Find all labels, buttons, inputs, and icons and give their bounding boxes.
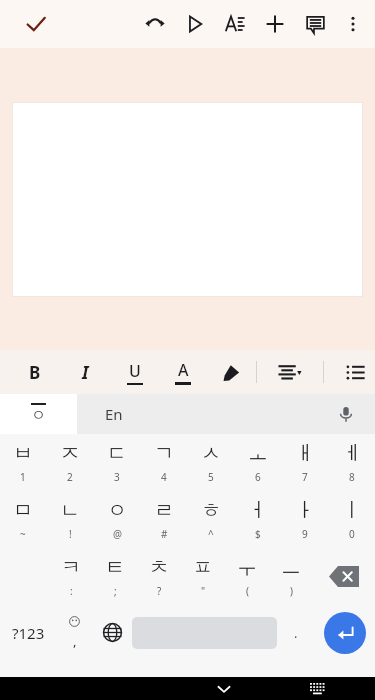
button[interactable]: ㄹ bbox=[140, 491, 187, 548]
staticText: 4 bbox=[161, 470, 167, 484]
button[interactable]: ㄷ bbox=[93, 434, 140, 491]
staticText: U bbox=[129, 360, 141, 382]
staticText: ㅗ bbox=[248, 441, 268, 466]
staticText: ^ bbox=[208, 527, 214, 541]
staticText: ㄴ bbox=[60, 498, 80, 523]
button[interactable]: Insert bbox=[257, 6, 293, 42]
button[interactable]: ㅣ bbox=[328, 491, 375, 548]
staticText: ㅐ bbox=[295, 441, 315, 466]
staticText: $ bbox=[255, 527, 261, 541]
staticText: ㅍ bbox=[193, 555, 213, 580]
staticText: ㅊ bbox=[149, 555, 169, 580]
button[interactable]: ㅂ bbox=[0, 434, 46, 491]
staticText: ㅇ bbox=[107, 498, 127, 523]
staticText: , bbox=[73, 632, 77, 650]
button[interactable]: Voice input bbox=[331, 399, 361, 429]
staticText: 1 bbox=[20, 470, 26, 484]
staticText: ㄱ bbox=[154, 441, 174, 466]
staticText: ㅈ bbox=[60, 441, 80, 466]
button[interactable]: ㄱ bbox=[140, 434, 187, 491]
button[interactable]: ㄴ bbox=[46, 491, 93, 548]
button[interactable]: More options bbox=[335, 6, 371, 42]
button[interactable]: ㅋ bbox=[49, 548, 93, 605]
button[interactable]: Bold bbox=[20, 357, 50, 387]
staticText: ㅁ bbox=[13, 498, 33, 523]
staticText: : bbox=[70, 584, 73, 598]
staticText: A bbox=[178, 359, 189, 381]
button[interactable]: Present bbox=[177, 6, 213, 42]
staticText: 5 bbox=[208, 470, 214, 484]
staticText: ) bbox=[290, 584, 293, 598]
button[interactable]: Backspace bbox=[313, 548, 375, 605]
staticText: 7 bbox=[302, 470, 308, 484]
button[interactable]: Undo bbox=[137, 6, 173, 42]
staticText: ㅏ bbox=[295, 498, 315, 523]
staticText: ?123 bbox=[12, 623, 45, 643]
staticText: @ bbox=[113, 527, 122, 541]
staticText: ~ bbox=[20, 527, 26, 541]
button[interactable]: Hide keyboard bbox=[36, 677, 375, 700]
button[interactable]: Comments bbox=[297, 6, 333, 42]
button[interactable]: ㅔ bbox=[328, 434, 375, 491]
button[interactable]: . bbox=[277, 605, 314, 660]
button[interactable]: Space bbox=[132, 605, 277, 660]
button[interactable]: ㅇ bbox=[93, 491, 140, 548]
staticText: . bbox=[294, 624, 298, 642]
staticText: ( bbox=[246, 584, 249, 598]
staticText: ㅎ bbox=[201, 498, 221, 523]
staticText: ㄹ bbox=[154, 498, 174, 523]
button[interactable]: ㅓ bbox=[234, 491, 281, 548]
staticText: # bbox=[161, 527, 168, 541]
staticText: 9 bbox=[302, 527, 308, 541]
staticText: ㅔ bbox=[342, 441, 362, 466]
button[interactable]: Done bbox=[16, 4, 56, 44]
button[interactable]: ㅜ bbox=[225, 548, 269, 605]
button[interactable]: ㅐ bbox=[281, 434, 328, 491]
staticText: 2 bbox=[67, 470, 73, 484]
button[interactable]: Text format bbox=[217, 6, 253, 42]
button[interactable]: ㅡ bbox=[269, 548, 313, 605]
button[interactable]: ㅗ bbox=[234, 434, 281, 491]
staticText: ㅣ bbox=[342, 498, 362, 523]
staticText: B bbox=[29, 361, 41, 384]
button[interactable]: ㅌ bbox=[93, 548, 137, 605]
staticText: ㅇ bbox=[31, 406, 46, 425]
staticText: ㅌ bbox=[105, 555, 125, 580]
button[interactable]: Emoji bbox=[56, 605, 93, 660]
staticText: ㅡ bbox=[281, 555, 301, 580]
button[interactable]: Align bbox=[269, 351, 311, 393]
button[interactable]: ㅊ bbox=[137, 548, 181, 605]
staticText: ; bbox=[114, 584, 117, 598]
button[interactable]: Bulleted list bbox=[338, 355, 372, 389]
button[interactable]: Enter bbox=[314, 605, 375, 660]
button[interactable]: Highlight bbox=[214, 355, 248, 389]
staticText: 6 bbox=[255, 470, 261, 484]
staticText: " bbox=[201, 584, 206, 598]
button[interactable]: Switch keyboard bbox=[303, 677, 333, 700]
staticText: ! bbox=[69, 527, 72, 541]
button[interactable]: ㅍ bbox=[181, 548, 225, 605]
staticText: ㅓ bbox=[248, 498, 268, 523]
button[interactable]: ㅅ bbox=[187, 434, 234, 491]
button[interactable]: ㅈ bbox=[46, 434, 93, 491]
button[interactable]: ㅏ bbox=[281, 491, 328, 548]
staticText: ㅜ bbox=[237, 555, 257, 580]
staticText: ㄷ bbox=[107, 441, 127, 466]
staticText: ㅅ bbox=[201, 441, 221, 466]
staticText: 8 bbox=[349, 470, 355, 484]
staticText: ? bbox=[157, 584, 162, 598]
button[interactable]: ?123 bbox=[0, 605, 56, 660]
button[interactable]: Underline bbox=[120, 357, 150, 387]
staticText: 0 bbox=[349, 527, 355, 541]
staticText: En bbox=[105, 404, 123, 424]
button[interactable]: Text color bbox=[168, 357, 198, 387]
button[interactable]: Italic bbox=[70, 357, 100, 387]
staticText: I bbox=[82, 361, 89, 384]
button[interactable]: ㅎ bbox=[187, 491, 234, 548]
button[interactable]: Change language bbox=[93, 605, 132, 660]
staticText: 3 bbox=[114, 470, 120, 484]
button[interactable]: ㅁ bbox=[0, 491, 46, 548]
button[interactable]: Korean layout bbox=[0, 394, 77, 434]
staticText: ㅂ bbox=[13, 441, 33, 466]
